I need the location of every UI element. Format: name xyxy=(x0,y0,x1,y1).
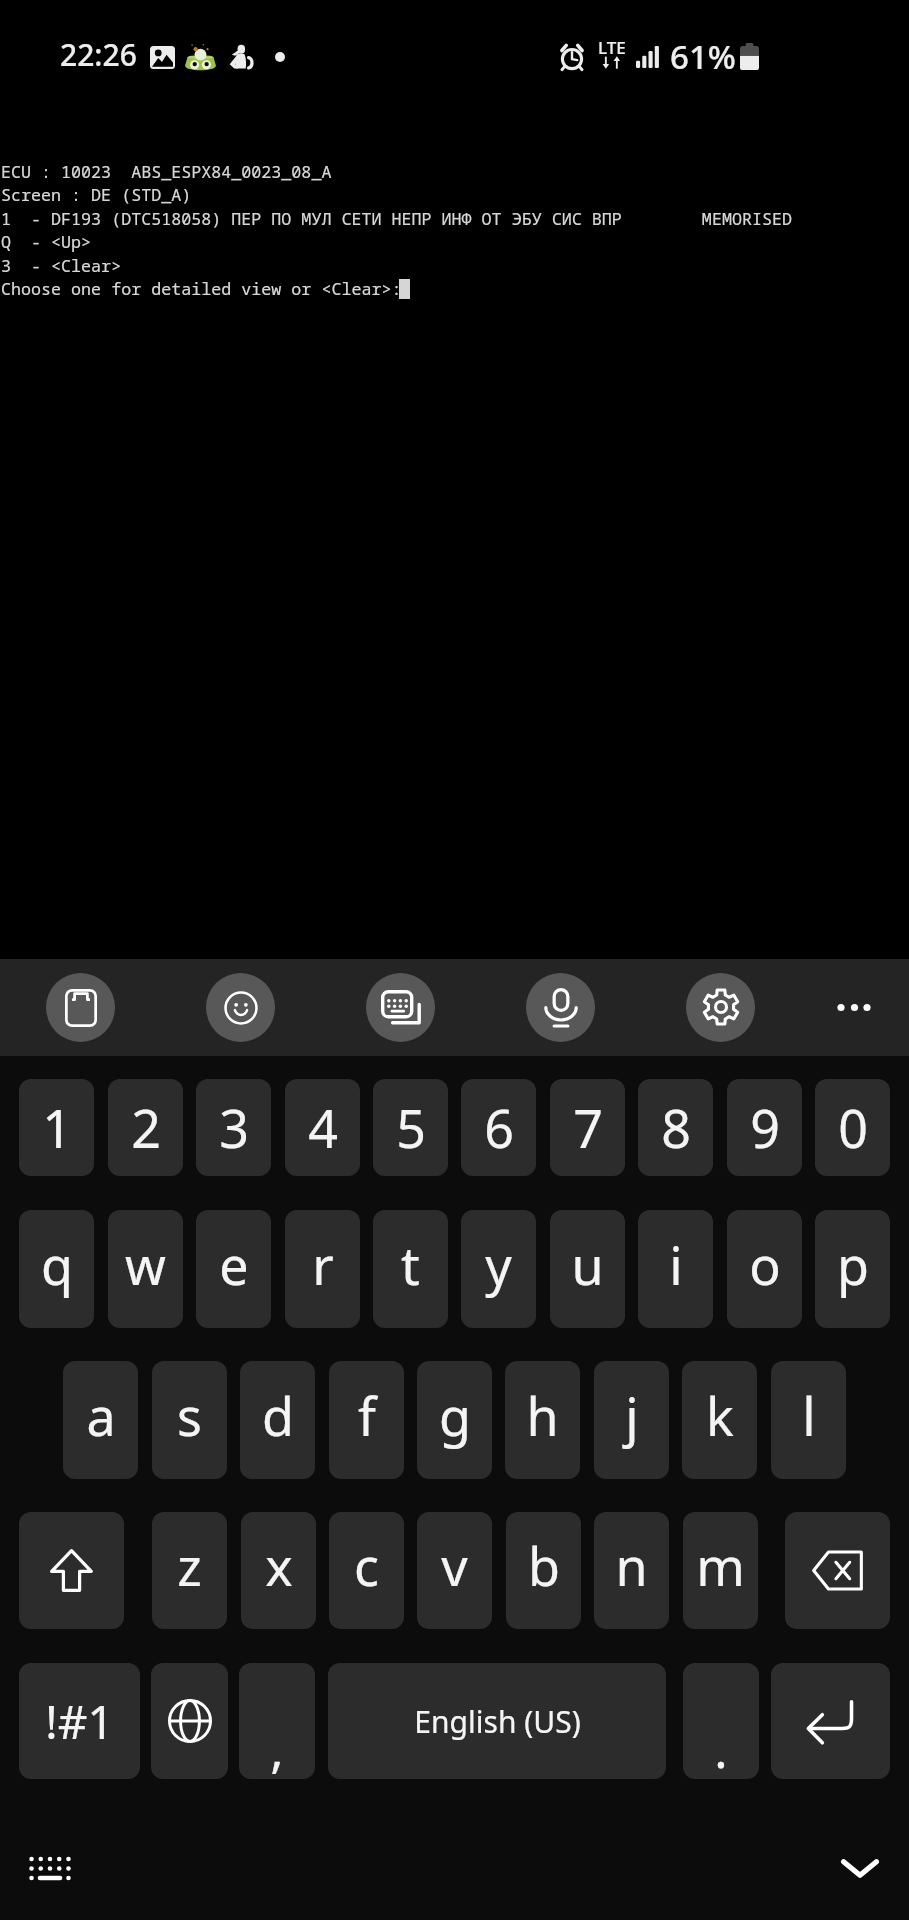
button[interactable]: Keyboard layouts xyxy=(366,973,435,1042)
button[interactable]: m xyxy=(683,1512,758,1629)
staticText: 22:26 xyxy=(60,34,137,75)
staticText: x xyxy=(265,1530,293,1601)
button[interactable]: x xyxy=(241,1512,316,1629)
staticText: u xyxy=(571,1229,604,1300)
staticText: t xyxy=(401,1229,420,1300)
staticText: z xyxy=(177,1530,202,1601)
staticText: 0 xyxy=(838,1092,868,1163)
button[interactable]: r xyxy=(285,1210,360,1328)
button[interactable]: 4 xyxy=(285,1079,360,1176)
staticText: 6 xyxy=(484,1092,514,1163)
button[interactable]: p xyxy=(815,1210,890,1328)
staticText: 1 xyxy=(42,1092,72,1163)
button[interactable]: e xyxy=(196,1210,271,1328)
button[interactable]: f xyxy=(329,1361,404,1479)
button[interactable]: o xyxy=(727,1210,802,1328)
staticText: o xyxy=(749,1229,781,1300)
button[interactable]: Hide keyboard xyxy=(818,1835,902,1901)
button[interactable]: More options xyxy=(820,972,888,1043)
staticText: 2 xyxy=(131,1092,161,1163)
button[interactable]: c xyxy=(329,1512,404,1629)
button[interactable]: , xyxy=(239,1663,315,1779)
button[interactable]: t xyxy=(373,1210,448,1328)
staticText: p xyxy=(837,1229,869,1300)
staticText: 3 - <Clear> xyxy=(1,254,122,277)
button[interactable]: 2 xyxy=(108,1079,183,1176)
button[interactable]: 8 xyxy=(638,1079,713,1176)
button[interactable]: b xyxy=(506,1512,581,1629)
button[interactable]: !#1 xyxy=(19,1663,140,1779)
staticText: 8 xyxy=(661,1092,691,1163)
staticText: q xyxy=(41,1229,73,1300)
button[interactable]: Settings xyxy=(686,973,755,1042)
staticText: Q - <Up> xyxy=(1,230,92,253)
button[interactable]: y xyxy=(461,1210,536,1328)
staticText: LTE xyxy=(598,36,626,59)
button[interactable]: Clipboard xyxy=(46,973,115,1042)
staticText: y xyxy=(485,1229,512,1300)
staticText: k xyxy=(706,1380,734,1451)
button[interactable]: 5 xyxy=(373,1079,448,1176)
staticText: j xyxy=(625,1380,639,1451)
staticText: c xyxy=(354,1530,379,1601)
staticText: Choose one for detailed view or <Clear>: xyxy=(1,277,402,300)
staticText: e xyxy=(219,1229,249,1300)
staticText: m xyxy=(696,1530,745,1601)
staticText: n xyxy=(615,1530,648,1601)
staticText: English (US) xyxy=(414,1701,581,1742)
button[interactable]: Emoji xyxy=(206,973,275,1042)
button[interactable]: Enter xyxy=(771,1663,890,1779)
button[interactable]: j xyxy=(594,1361,669,1479)
staticText: w xyxy=(125,1229,166,1300)
button[interactable]: i xyxy=(638,1210,713,1328)
button[interactable]: 1 xyxy=(19,1079,94,1176)
button[interactable]: s xyxy=(152,1361,227,1479)
staticText: l xyxy=(802,1380,816,1451)
staticText: 3 xyxy=(219,1092,249,1163)
button[interactable]: u xyxy=(550,1210,625,1328)
staticText: 1 - DF193 (DTC518058) ПЕР ПО МУЛ СЕТИ НЕ… xyxy=(1,207,792,230)
staticText: a xyxy=(86,1380,116,1451)
button[interactable]: g xyxy=(417,1361,492,1479)
staticText: d xyxy=(262,1380,294,1451)
staticText: b xyxy=(528,1530,560,1601)
staticText: f xyxy=(358,1380,376,1451)
button[interactable]: n xyxy=(594,1512,669,1629)
button[interactable]: v xyxy=(417,1512,492,1629)
staticText: r xyxy=(312,1229,334,1300)
button[interactable]: w xyxy=(108,1210,183,1328)
button[interactable]: d xyxy=(240,1361,315,1479)
button[interactable]: Change language xyxy=(151,1663,228,1779)
button[interactable]: . xyxy=(683,1663,759,1779)
staticText: 5 xyxy=(396,1092,426,1163)
staticText: ECU : 10023 ABS_ESPX84_0023_08_A xyxy=(1,160,332,183)
staticText: !#1 xyxy=(45,1690,114,1753)
staticText: 61% xyxy=(670,34,736,79)
button[interactable]: 0 xyxy=(815,1079,890,1176)
button[interactable]: 9 xyxy=(727,1079,802,1176)
button[interactable]: Shift xyxy=(19,1512,124,1629)
staticText: 7 xyxy=(573,1092,603,1163)
button[interactable]: h xyxy=(505,1361,580,1479)
staticText: i xyxy=(669,1229,683,1300)
button[interactable]: q xyxy=(19,1210,94,1328)
staticText: . xyxy=(714,1715,728,1779)
button[interactable]: a xyxy=(63,1361,138,1479)
staticText: v xyxy=(441,1530,468,1601)
button[interactable]: Switch keyboard xyxy=(8,1835,92,1901)
button[interactable]: 6 xyxy=(461,1079,536,1176)
staticText: , xyxy=(270,1715,284,1779)
staticText: g xyxy=(439,1380,471,1451)
button[interactable]: Backspace xyxy=(785,1512,890,1629)
staticText: s xyxy=(177,1380,202,1451)
staticText: h xyxy=(526,1380,559,1451)
button[interactable]: k xyxy=(682,1361,757,1479)
staticText: 9 xyxy=(750,1092,780,1163)
button[interactable]: 3 xyxy=(196,1079,271,1176)
button[interactable]: 7 xyxy=(550,1079,625,1176)
button[interactable]: l xyxy=(771,1361,846,1479)
button[interactable]: English (US) xyxy=(328,1663,666,1779)
button[interactable]: z xyxy=(152,1512,227,1629)
staticText: 4 xyxy=(308,1092,338,1163)
button[interactable]: Voice input xyxy=(526,973,595,1042)
